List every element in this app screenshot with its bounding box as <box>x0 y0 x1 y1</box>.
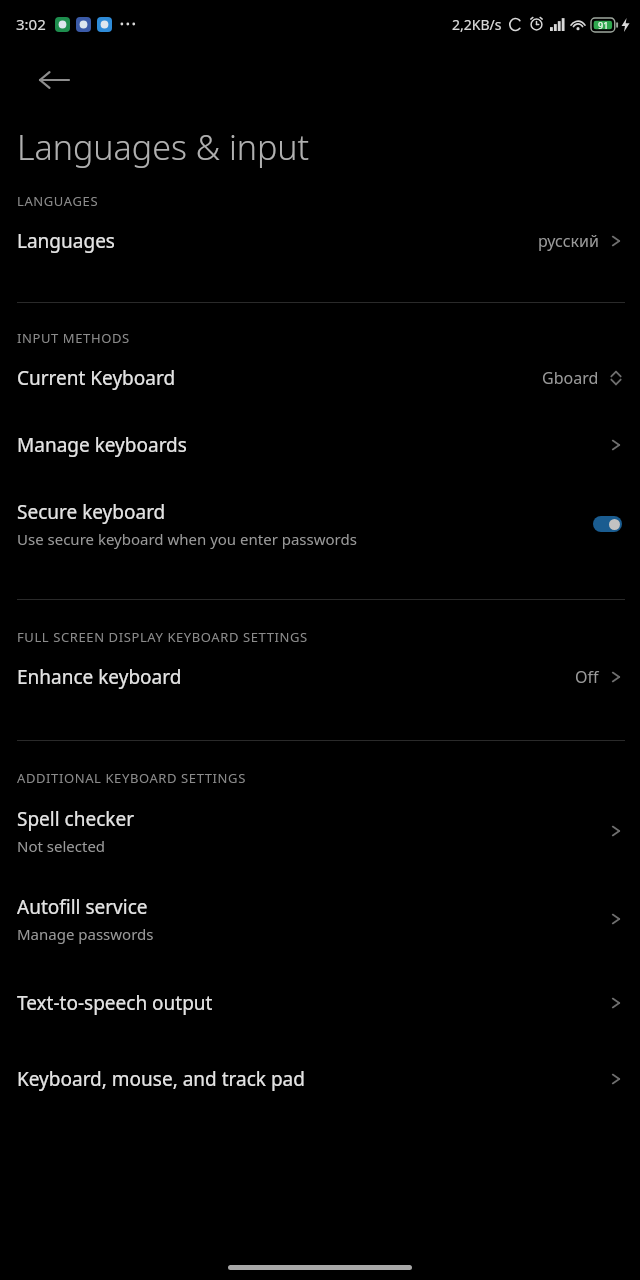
staticText: Off <box>575 666 599 688</box>
staticText: Enhance keyboard <box>17 664 182 690</box>
staticText: Autofill service <box>17 894 148 920</box>
button[interactable]: Secure keyboard <box>0 481 640 567</box>
staticText: 91 <box>598 19 609 31</box>
button[interactable]: Manage keyboards <box>0 409 640 481</box>
staticText: Gboard <box>542 367 599 389</box>
staticText: Not selected <box>17 836 106 856</box>
staticText: Keyboard, mouse, and track pad <box>17 1066 305 1092</box>
staticText: Current Keyboard <box>17 365 176 391</box>
button[interactable]: Current Keyboard <box>0 347 640 409</box>
staticText: Manage keyboards <box>17 432 187 458</box>
button[interactable]: Enhance keyboard <box>0 646 640 708</box>
staticText: Text-to-speech output <box>17 990 213 1016</box>
staticText: FULL SCREEN DISPLAY KEYBOARD SETTINGS <box>17 628 308 646</box>
staticText: Languages <box>17 228 115 254</box>
staticText: русский <box>538 230 599 252</box>
staticText: INPUT METHODS <box>17 329 130 347</box>
staticText: LANGUAGES <box>17 192 99 210</box>
button[interactable]: Secure keyboard toggle <box>593 516 622 532</box>
staticText: Spell checker <box>17 806 134 832</box>
button[interactable]: Autofill service <box>0 875 640 963</box>
staticText: Use secure keyboard when you enter passw… <box>17 529 357 549</box>
button[interactable]: Text-to-speech output <box>0 963 640 1043</box>
staticText: 2,2KB/s <box>452 15 502 34</box>
staticText: Manage passwords <box>17 924 154 944</box>
button[interactable]: Keyboard, mouse, and track pad <box>0 1043 640 1115</box>
button[interactable]: Languages <box>0 210 640 272</box>
staticText: 3:02 <box>16 14 46 34</box>
staticText: ADDITIONAL KEYBOARD SETTINGS <box>17 769 246 787</box>
button[interactable]: Back <box>22 48 86 112</box>
staticText: Secure keyboard <box>17 499 166 525</box>
button[interactable]: Spell checker <box>0 787 640 875</box>
staticText: Languages & input <box>17 124 310 170</box>
